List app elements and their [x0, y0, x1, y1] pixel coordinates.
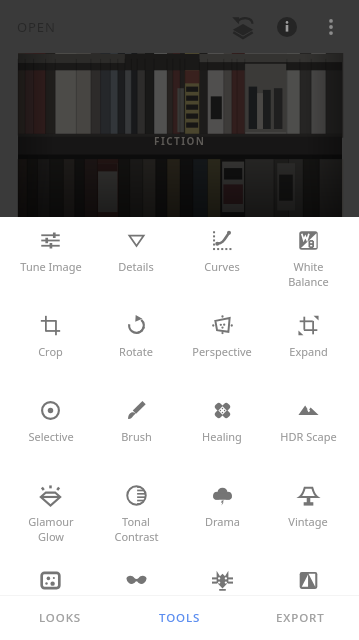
button[interactable]: Healing [179, 387, 265, 472]
button[interactable]: Drama [179, 472, 265, 557]
button[interactable]: Brush [93, 387, 179, 472]
button[interactable] [93, 557, 179, 640]
button[interactable]: Details [93, 217, 179, 302]
staticText: Expand [289, 344, 328, 359]
button[interactable]: LOOKS [0, 596, 119, 640]
staticText: Healing [202, 429, 242, 444]
button[interactable]: HDR Scape [265, 387, 351, 472]
staticText: Tonal [122, 514, 150, 529]
button[interactable]: Tune Image [8, 217, 93, 302]
button[interactable]: Rotate [93, 302, 179, 387]
button[interactable]: TOOLS [119, 596, 239, 640]
button[interactable]: EXPORT [239, 596, 359, 640]
staticText: Drama [205, 514, 240, 529]
staticText: Perspective [192, 344, 252, 359]
button[interactable]: Info [265, 5, 309, 49]
button[interactable]: Crop [8, 302, 93, 387]
staticText: Curves [204, 259, 240, 274]
button[interactable]: More options [309, 5, 353, 49]
staticText: Balance [288, 274, 329, 289]
button[interactable]: Curves [179, 217, 265, 302]
staticText: Brush [121, 429, 152, 444]
button[interactable]: Expand [265, 302, 351, 387]
button[interactable]: Glamour [8, 472, 93, 557]
staticText: Tune Image [20, 259, 82, 274]
button[interactable] [265, 557, 351, 640]
button[interactable]: Vintage [265, 472, 351, 557]
button[interactable]: Revert [221, 5, 265, 49]
button[interactable] [8, 557, 93, 640]
staticText: EXPORT [276, 610, 325, 626]
button[interactable]: Perspective [179, 302, 265, 387]
staticText: Glamour [28, 514, 74, 529]
staticText: Selective [28, 429, 74, 444]
button[interactable]: Selective [8, 387, 93, 472]
staticText: Details [118, 259, 154, 274]
staticText: Crop [38, 344, 63, 359]
staticText: Contrast [114, 529, 159, 544]
staticText: HDR Scape [280, 429, 337, 444]
button[interactable] [179, 557, 265, 640]
staticText: TOOLS [159, 610, 201, 626]
staticText: Glow [38, 529, 64, 544]
button[interactable]: White [265, 217, 351, 302]
staticText: LOOKS [39, 610, 82, 626]
staticText: Rotate [119, 344, 153, 359]
staticText: White [293, 259, 324, 274]
staticText: OPEN [17, 18, 56, 36]
button[interactable]: Tonal [93, 472, 179, 557]
staticText: Vintage [288, 514, 328, 529]
staticText: FICTION [154, 134, 206, 148]
